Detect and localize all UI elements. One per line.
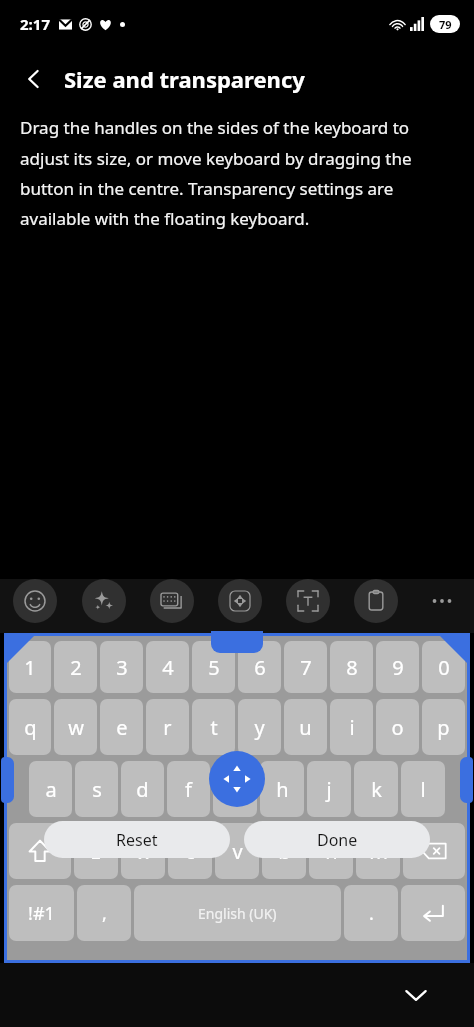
button[interactable]: l	[401, 761, 445, 817]
button[interactable]: h	[260, 761, 304, 817]
button[interactable]: 6	[238, 641, 281, 693]
staticText: n	[325, 838, 338, 865]
button[interactable]: r	[146, 699, 189, 755]
staticText: ,	[102, 901, 107, 926]
staticText: English (UK)	[198, 904, 277, 923]
button[interactable]: Resize from left	[1, 757, 14, 803]
button[interactable]: Done	[244, 821, 430, 858]
staticText: l	[420, 776, 426, 803]
staticText: d	[136, 776, 149, 803]
staticText: 2:17	[20, 14, 50, 34]
staticText: o	[391, 714, 404, 741]
staticText: 2	[70, 654, 82, 681]
staticText: 1	[24, 654, 36, 681]
button[interactable]: Shift	[9, 823, 71, 879]
staticText: z	[91, 838, 101, 865]
button[interactable]: AI suggestions	[82, 579, 126, 623]
button[interactable]: Resize from top	[211, 631, 263, 653]
button[interactable]: Backspace	[403, 823, 465, 879]
staticText: k	[371, 776, 382, 803]
staticText: Reset	[116, 829, 158, 851]
staticText: q	[24, 714, 37, 741]
button[interactable]: d	[121, 761, 164, 817]
staticText: Done	[317, 829, 358, 851]
button[interactable]: e	[100, 699, 143, 755]
button[interactable]: 8	[330, 641, 373, 693]
button[interactable]: .	[344, 885, 398, 941]
button[interactable]: Reset	[44, 821, 230, 858]
button[interactable]: 2	[54, 641, 97, 693]
staticText: h	[276, 776, 289, 803]
button[interactable]: b	[262, 823, 306, 879]
staticText: f	[185, 776, 192, 803]
staticText: v	[232, 838, 243, 865]
button[interactable]: t	[192, 699, 235, 755]
button[interactable]: 4	[146, 641, 189, 693]
staticText: y	[254, 714, 265, 741]
button[interactable]: 3	[100, 641, 143, 693]
button[interactable]: n	[309, 823, 353, 879]
staticText: b	[278, 838, 291, 865]
button[interactable]: s	[75, 761, 118, 817]
button[interactable]: c	[168, 823, 212, 879]
staticText: r	[163, 714, 172, 741]
staticText: j	[326, 776, 332, 803]
button[interactable]: !#1	[9, 885, 74, 941]
button[interactable]: m	[356, 823, 400, 879]
button[interactable]: Enter	[401, 885, 465, 941]
button[interactable]: j	[307, 761, 351, 817]
staticText: 4	[162, 654, 174, 681]
staticText: x	[138, 838, 149, 865]
button[interactable]: a	[29, 761, 72, 817]
button[interactable]: Move keyboard	[209, 751, 265, 807]
button[interactable]: p	[422, 699, 465, 755]
button[interactable]: 5	[192, 641, 235, 693]
staticText: Drag the handles on the sides of the key…	[20, 116, 458, 230]
button[interactable]: 1	[9, 641, 51, 693]
staticText: Size and transparency	[64, 64, 305, 94]
button[interactable]: x	[121, 823, 165, 879]
button[interactable]: 9	[376, 641, 419, 693]
staticText: p	[437, 714, 450, 741]
button[interactable]: Back	[12, 57, 56, 101]
button[interactable]: v	[215, 823, 259, 879]
staticText: t	[210, 714, 218, 741]
button[interactable]: i	[330, 699, 373, 755]
button[interactable]: English (UK)	[134, 885, 341, 941]
button[interactable]: w	[54, 699, 97, 755]
button[interactable]: Resize keyboard	[218, 579, 262, 623]
staticText: .	[369, 901, 374, 926]
staticText: 3	[116, 654, 128, 681]
button[interactable]: k	[354, 761, 398, 817]
button[interactable]: z	[74, 823, 118, 879]
button[interactable]: Themes	[150, 579, 194, 623]
staticText: !#1	[28, 901, 55, 926]
button[interactable]: More options	[422, 581, 462, 621]
staticText: 79	[439, 17, 452, 32]
button[interactable]: f	[167, 761, 210, 817]
button[interactable]: ,	[77, 885, 131, 941]
staticText: 6	[254, 654, 266, 681]
staticText: e	[116, 714, 128, 741]
staticText: m	[369, 838, 388, 865]
button[interactable]: o	[376, 699, 419, 755]
staticText: 0	[438, 654, 450, 681]
staticText: u	[299, 714, 312, 741]
button[interactable]: q	[9, 699, 51, 755]
staticText: s	[92, 776, 102, 803]
button[interactable]: g	[213, 761, 257, 817]
staticText: 5	[208, 654, 220, 681]
button[interactable]: Clipboard	[354, 579, 398, 623]
button[interactable]: u	[284, 699, 327, 755]
button[interactable]: Resize from right	[460, 757, 473, 803]
button[interactable]: Emoji	[13, 579, 57, 623]
button[interactable]: 0	[422, 641, 465, 693]
staticText: 7	[300, 654, 312, 681]
staticText: i	[349, 714, 355, 741]
button[interactable]: y	[238, 699, 281, 755]
button[interactable]: Hide keyboard	[394, 973, 438, 1017]
staticText: g	[229, 776, 242, 803]
button[interactable]: 7	[284, 641, 327, 693]
button[interactable]: Text scan	[286, 579, 330, 623]
staticText: c	[185, 838, 195, 865]
